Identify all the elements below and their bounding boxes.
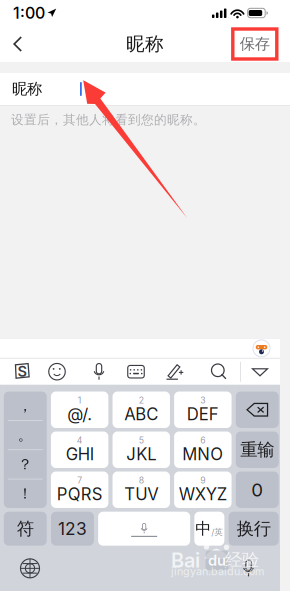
staticText: 9: [200, 475, 205, 485]
button[interactable]: 保存: [233, 29, 290, 59]
staticText: 4: [77, 435, 83, 445]
staticText: PQRS: [57, 484, 103, 504]
staticText: 3: [200, 395, 205, 405]
staticText: jingyan.baidu.com: [171, 565, 264, 578]
button[interactable]: 。: [4, 421, 47, 449]
button[interactable]: 123: [51, 512, 94, 546]
staticText: 1:00: [13, 3, 45, 23]
button[interactable]: Space: [98, 512, 190, 546]
staticText: MNO: [182, 444, 223, 464]
staticText: DEF: [187, 404, 219, 424]
staticText: 保存: [240, 34, 270, 54]
staticText: Bai: [171, 548, 200, 572]
staticText: GHI: [66, 444, 94, 464]
button[interactable]: Emoji: [47, 362, 66, 381]
staticText: 5: [139, 435, 144, 445]
staticText: 符: [17, 518, 34, 540]
button[interactable]: 换行: [229, 512, 279, 546]
staticText: /英: [211, 527, 223, 538]
staticText: 昵称: [12, 79, 42, 99]
staticText: du: [208, 551, 226, 569]
button[interactable]: Handwriting: [165, 362, 184, 381]
staticText: 7: [77, 475, 82, 485]
button[interactable]: Keyboard layout: [126, 362, 145, 381]
button[interactable]: ，: [4, 391, 47, 420]
staticText: 2: [139, 395, 144, 405]
button[interactable]: 符: [4, 512, 47, 546]
staticText: @/.: [67, 404, 92, 424]
staticText: 经验: [225, 549, 259, 571]
staticText: S: [18, 362, 28, 380]
button[interactable]: Search: [209, 362, 228, 381]
button[interactable]: 7: [51, 471, 108, 508]
button[interactable]: Delete: [236, 391, 279, 428]
button[interactable]: 2: [113, 391, 170, 428]
staticText: ？: [18, 455, 33, 474]
staticText: ！: [18, 484, 33, 503]
button[interactable]: Switch keyboard: [0, 558, 40, 578]
staticText: 昵称: [126, 32, 164, 56]
button[interactable]: 5: [113, 431, 170, 468]
staticText: 。: [18, 426, 33, 444]
staticText: 中: [195, 519, 211, 539]
staticText: 0: [251, 478, 263, 501]
button[interactable]: 8: [113, 471, 170, 508]
button[interactable]: Back: [0, 28, 39, 60]
staticText: 123: [58, 518, 87, 539]
staticText: ，: [18, 396, 33, 415]
button[interactable]: Sogou input: [11, 362, 32, 381]
button[interactable]: 9: [174, 471, 232, 508]
staticText: 重输: [240, 439, 274, 461]
button[interactable]: Hide keyboard: [250, 362, 269, 381]
staticText: 1: [78, 395, 82, 405]
staticText: 8: [139, 475, 144, 485]
staticText: JKL: [126, 444, 156, 464]
button[interactable]: 6: [174, 431, 232, 468]
button[interactable]: Assistant: [253, 340, 270, 357]
staticText: 设置后，其他人将看到您的昵称。: [11, 112, 206, 128]
staticText: WXYZ: [179, 484, 227, 504]
button[interactable]: Chinese English toggle: [194, 512, 224, 546]
staticText: 6: [200, 435, 205, 445]
button[interactable]: ！: [4, 479, 47, 508]
staticText: ABC: [124, 404, 158, 424]
button[interactable]: Dictate: [239, 559, 280, 578]
button[interactable]: Voice input: [89, 362, 108, 381]
button[interactable]: 4: [51, 431, 108, 468]
button[interactable]: 1: [51, 391, 108, 428]
button[interactable]: 0: [236, 471, 279, 508]
staticText: 换行: [237, 518, 271, 540]
button[interactable]: 3: [174, 391, 232, 428]
button[interactable]: ？: [4, 450, 47, 479]
staticText: TUV: [124, 484, 158, 504]
button[interactable]: 重输: [236, 431, 279, 468]
